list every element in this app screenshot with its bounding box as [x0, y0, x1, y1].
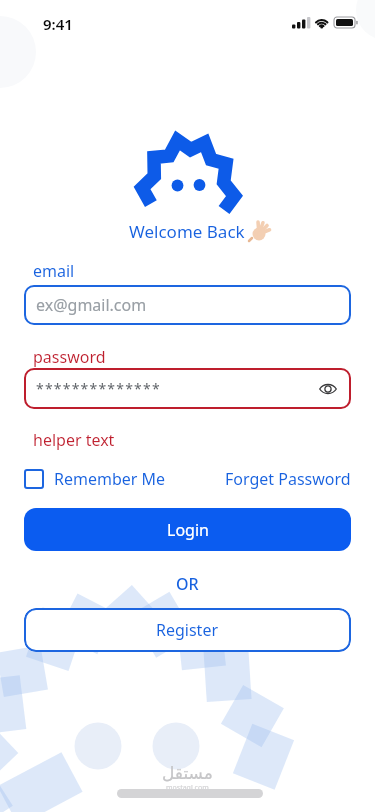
staticText: 9:41 [43, 14, 73, 34]
staticText: OR [176, 573, 199, 595]
staticText: ex@gmail.com [36, 294, 147, 316]
staticText: Register [156, 619, 219, 641]
staticText: مستقل [162, 763, 213, 783]
button[interactable]: Remember Me [24, 468, 166, 490]
staticText: helper text [33, 429, 115, 451]
staticText: password [33, 346, 106, 368]
button[interactable]: Forget Password [225, 468, 351, 490]
staticText: mostaql.com [166, 783, 209, 793]
staticText: Welcome Back [129, 220, 245, 243]
button[interactable]: Login [24, 508, 351, 551]
button[interactable]: ************** [24, 368, 351, 409]
button[interactable]: Register [24, 608, 351, 652]
staticText: ************** [36, 379, 161, 398]
staticText: email [33, 260, 75, 282]
button[interactable]: ex@gmail.com [24, 285, 351, 325]
staticText: Remember Me [54, 468, 166, 490]
staticText: Login [167, 519, 209, 541]
